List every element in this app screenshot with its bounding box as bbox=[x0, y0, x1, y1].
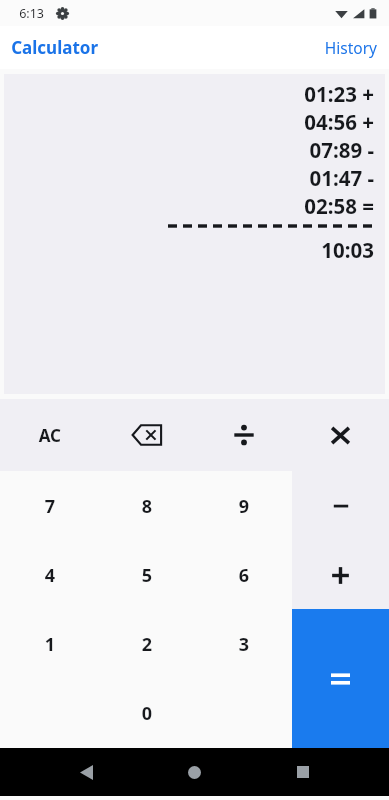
staticText: 5 bbox=[141, 563, 152, 588]
staticText: History bbox=[324, 37, 377, 58]
button[interactable]: 7 bbox=[0, 471, 98, 541]
button[interactable]: Minus bbox=[292, 471, 389, 541]
staticText: 07:89 - bbox=[309, 136, 374, 164]
staticText: 01:23 + bbox=[304, 80, 374, 108]
button[interactable]: 5 bbox=[98, 541, 195, 610]
button[interactable]: Multiply bbox=[292, 399, 389, 471]
button[interactable]: Divide bbox=[195, 399, 292, 471]
button[interactable]: 0 bbox=[98, 679, 195, 748]
button[interactable]: AC bbox=[0, 399, 98, 471]
staticText: 4 bbox=[44, 563, 55, 588]
staticText: 04:56 + bbox=[304, 108, 374, 136]
button[interactable]: 2 bbox=[98, 610, 195, 679]
staticText: 6 bbox=[238, 563, 249, 588]
staticText: 02:58 = bbox=[304, 192, 374, 220]
staticText: 3 bbox=[238, 632, 249, 657]
button[interactable]: Backspace bbox=[98, 399, 195, 471]
button[interactable]: Equals bbox=[292, 609, 389, 748]
button[interactable]: Back bbox=[70, 755, 103, 790]
button[interactable]: History bbox=[314, 31, 389, 64]
staticText: 01:47 - bbox=[309, 164, 374, 192]
staticText: 8 bbox=[141, 494, 152, 519]
button[interactable]: 1 bbox=[0, 610, 98, 679]
button[interactable]: 8 bbox=[98, 471, 195, 541]
button[interactable]: Recent apps bbox=[287, 756, 319, 788]
staticText: 6:13 bbox=[19, 5, 44, 22]
staticText: Calculator bbox=[11, 36, 98, 59]
staticText: 2 bbox=[141, 632, 152, 657]
staticText: 9 bbox=[238, 494, 249, 519]
button[interactable]: Plus bbox=[292, 541, 389, 609]
button[interactable]: 3 bbox=[195, 610, 292, 679]
staticText: 1 bbox=[44, 632, 55, 657]
button[interactable]: 9 bbox=[195, 471, 292, 541]
button[interactable]: Calculator bbox=[0, 32, 106, 63]
staticText: AC bbox=[38, 424, 61, 447]
staticText: 10:03 bbox=[321, 236, 374, 264]
staticText: 0 bbox=[141, 701, 152, 726]
button[interactable]: Home bbox=[178, 756, 211, 789]
staticText: 7 bbox=[44, 494, 55, 519]
button[interactable]: 6 bbox=[195, 541, 292, 610]
button[interactable]: 4 bbox=[0, 541, 98, 610]
